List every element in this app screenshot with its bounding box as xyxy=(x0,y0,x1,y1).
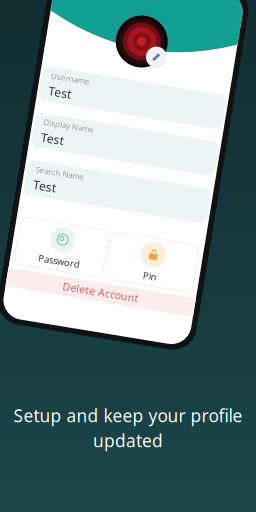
staticText: Setup and keep your profile xyxy=(13,404,242,427)
staticText: Test xyxy=(39,142,62,158)
staticText: Test xyxy=(39,190,62,206)
button[interactable]: Password xyxy=(32,232,121,280)
staticText: Display Name xyxy=(39,130,90,140)
button[interactable]: Display Name xyxy=(30,126,216,161)
staticText: Test xyxy=(39,95,62,111)
button[interactable]: Username xyxy=(30,79,216,114)
button[interactable]: Search Name xyxy=(30,174,216,209)
staticText: Search Name xyxy=(39,178,88,188)
button[interactable]: Pin xyxy=(124,232,213,280)
staticText: Delete Account xyxy=(84,287,161,301)
button[interactable]: Delete Account xyxy=(28,284,218,303)
staticText: Password xyxy=(56,264,98,276)
staticText: updated xyxy=(93,429,163,452)
staticText: Username xyxy=(39,83,78,93)
